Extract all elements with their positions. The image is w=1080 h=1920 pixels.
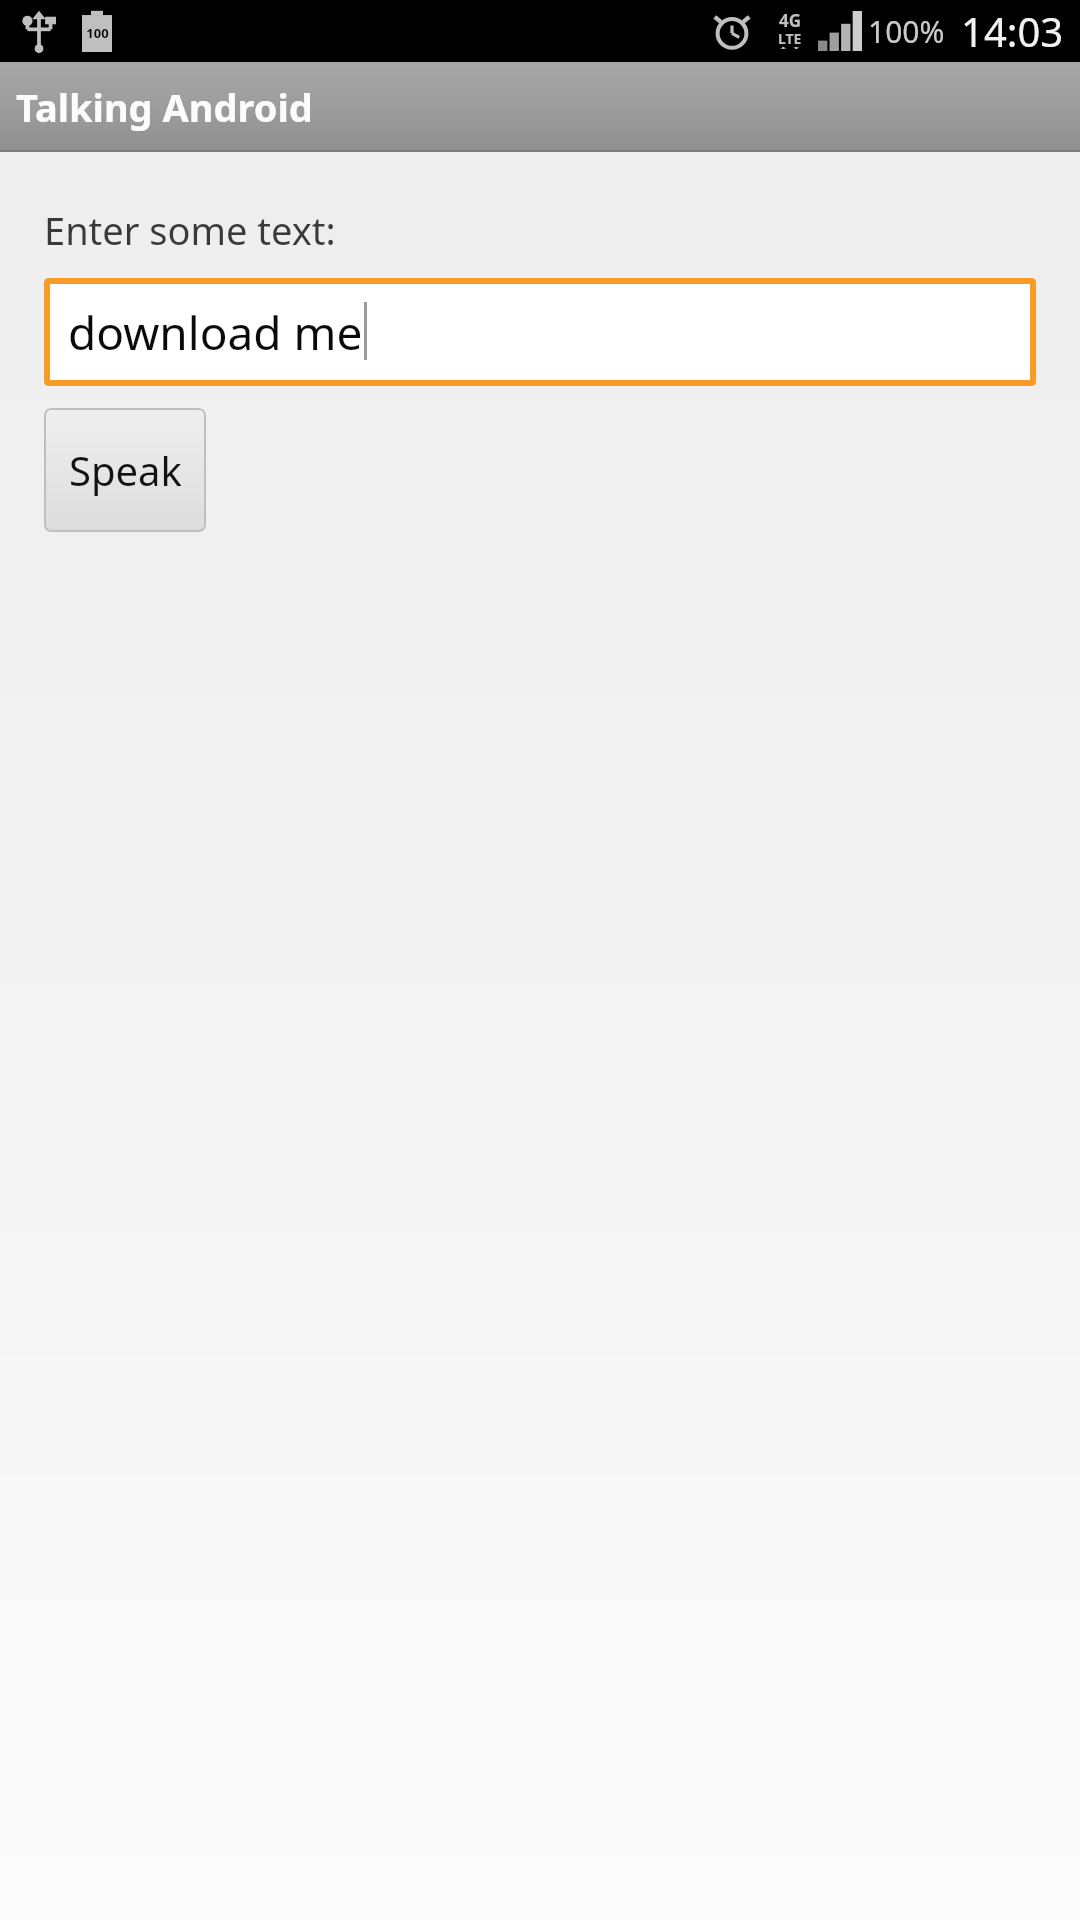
staticText: 14:03 xyxy=(961,4,1064,58)
button[interactable]: download me xyxy=(44,278,1036,386)
staticText: Speak xyxy=(69,443,182,497)
staticText: 4G xyxy=(779,9,802,32)
button[interactable]: Speak xyxy=(44,408,206,532)
staticText: 100 xyxy=(86,24,109,42)
staticText: 100% xyxy=(868,11,945,52)
staticText: Talking Android xyxy=(16,81,313,133)
staticText: download me xyxy=(68,301,363,364)
staticText: Enter some text: xyxy=(44,204,336,256)
staticText: LTE xyxy=(778,29,802,48)
